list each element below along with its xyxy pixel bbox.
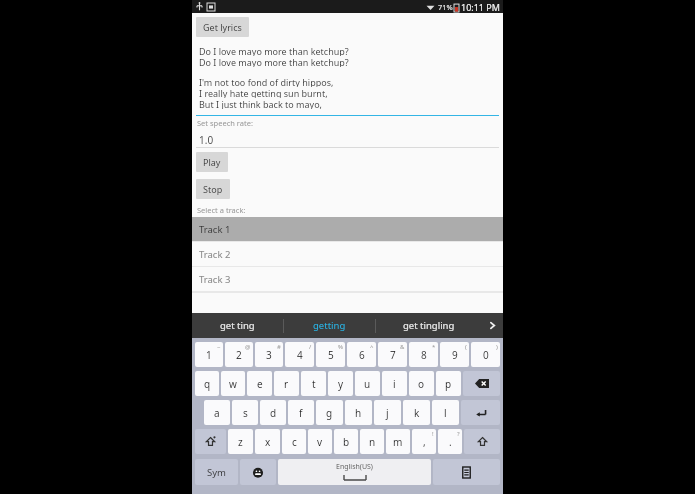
button[interactable]: Get lyrics [196, 17, 249, 37]
button[interactable]: 1 [195, 342, 223, 367]
button[interactable]: d [260, 400, 286, 425]
staticText: w [229, 377, 237, 391]
staticText: q [204, 377, 211, 391]
staticText: u [364, 377, 371, 391]
staticText: getting [313, 319, 346, 332]
button[interactable]: get tingling [376, 313, 481, 338]
button[interactable]: s [232, 400, 258, 425]
button[interactable]: 8 [409, 342, 438, 367]
staticText: j [386, 406, 389, 420]
button[interactable]: 6 [347, 342, 376, 367]
staticText: 5 [328, 348, 334, 362]
button[interactable]: Enter [461, 400, 500, 425]
button[interactable]: t [301, 371, 326, 396]
button[interactable]: q [195, 371, 219, 396]
button[interactable]: Input method [433, 459, 500, 485]
button[interactable]: Track 1 [192, 217, 503, 241]
staticText: k [414, 406, 420, 420]
staticText: Set speech rate: [197, 118, 253, 128]
staticText: b [343, 435, 350, 449]
staticText: ( [465, 343, 467, 351]
staticText: 7 [390, 348, 396, 362]
button[interactable]: More suggestions [481, 313, 503, 338]
staticText: f [299, 406, 303, 420]
staticText: Track 1 [199, 223, 231, 236]
staticText: n [369, 435, 376, 449]
staticText: 2 [236, 348, 242, 362]
staticText: v [317, 435, 323, 449]
button[interactable]: . [438, 429, 462, 454]
button[interactable]: 3 [255, 342, 283, 367]
staticText: I really hate getting sun burnt, [199, 87, 328, 98]
button[interactable]: Play [196, 152, 228, 172]
staticText: m [393, 435, 403, 449]
button[interactable]: x [255, 429, 280, 454]
staticText: Select a track: [197, 205, 246, 215]
staticText: # [277, 343, 281, 351]
button[interactable]: w [221, 371, 245, 396]
button[interactable]: Backspace [463, 371, 500, 396]
staticText: 1.0 [199, 133, 214, 147]
staticText: p [445, 377, 452, 391]
staticText: 0 [483, 348, 489, 362]
button[interactable]: Shift [195, 429, 226, 454]
button[interactable]: Symbols [195, 459, 238, 485]
button[interactable]: p [436, 371, 461, 396]
button[interactable]: Stop [196, 179, 230, 199]
button[interactable]: n [360, 429, 384, 454]
staticText: r [284, 377, 289, 391]
staticText: l [444, 406, 447, 420]
staticText: 9 [452, 348, 458, 362]
staticText: Do I love mayo more than ketchup? [199, 45, 349, 56]
button[interactable]: u [355, 371, 380, 396]
button[interactable]: b [334, 429, 358, 454]
button[interactable]: Shift [464, 429, 500, 454]
staticText: English(US) [336, 462, 373, 472]
button[interactable]: e [247, 371, 272, 396]
button[interactable]: v [308, 429, 332, 454]
button[interactable]: f [288, 400, 314, 425]
staticText: x [265, 435, 271, 449]
staticText: I'm not too fond of dirty hippos, [199, 76, 334, 87]
staticText: 10:11 PM [461, 1, 500, 13]
button[interactable]: c [282, 429, 306, 454]
button[interactable]: getting [284, 313, 375, 338]
button[interactable]: r [274, 371, 299, 396]
button[interactable]: o [409, 371, 434, 396]
button[interactable]: m [386, 429, 410, 454]
button[interactable]: k [403, 400, 430, 425]
staticText: g [326, 406, 333, 420]
button[interactable]: Track 2 [192, 242, 503, 266]
staticText: 71% [438, 2, 453, 12]
button[interactable]: a [204, 400, 230, 425]
button[interactable]: 4 [285, 342, 314, 367]
staticText: % [338, 343, 343, 351]
button[interactable]: 2 [225, 342, 253, 367]
button[interactable]: l [432, 400, 459, 425]
button[interactable]: 5 [316, 342, 345, 367]
button[interactable]: y [328, 371, 353, 396]
staticText: t [312, 377, 316, 391]
button[interactable]: Space [278, 459, 431, 485]
button[interactable]: z [228, 429, 253, 454]
staticText: Track 3 [199, 273, 231, 286]
staticText: Stop [203, 183, 223, 195]
button[interactable]: get ting [192, 313, 283, 338]
button[interactable]: i [382, 371, 407, 396]
staticText: o [418, 377, 425, 391]
button[interactable]: h [345, 400, 372, 425]
staticText: z [238, 435, 243, 449]
button[interactable]: 9 [440, 342, 469, 367]
button[interactable]: Track 3 [192, 267, 503, 291]
button[interactable]: Emoji [240, 459, 276, 485]
staticText: i [393, 377, 396, 391]
button[interactable]: 7 [378, 342, 407, 367]
button[interactable]: 0 [471, 342, 500, 367]
button[interactable]: j [374, 400, 401, 425]
staticText: s [243, 406, 248, 420]
staticText: e [257, 377, 263, 391]
staticText: Do I love mayo more than ketchup? [199, 56, 349, 67]
button[interactable]: , [412, 429, 436, 454]
staticText: 6 [359, 348, 365, 362]
button[interactable]: g [316, 400, 343, 425]
